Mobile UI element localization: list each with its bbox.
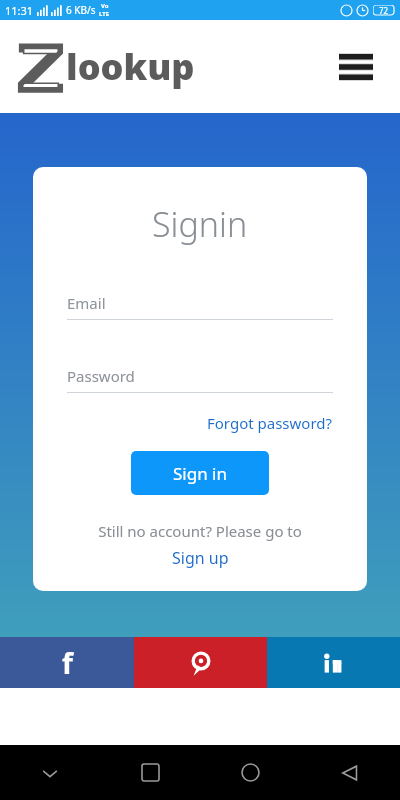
button[interactable]: Forgot password? <box>207 413 333 433</box>
button[interactable]: Home <box>200 745 300 800</box>
staticText: lookup <box>66 42 195 91</box>
button[interactable]: Facebook <box>0 637 134 688</box>
staticText: Still no account? Please go to <box>98 521 302 541</box>
staticText: Sign in <box>173 462 227 485</box>
staticText: f <box>62 644 73 682</box>
button[interactable]: LinkedIn <box>267 637 400 688</box>
button[interactable]: Menu <box>334 45 378 89</box>
staticText: Signin <box>152 201 248 247</box>
staticText: Email <box>67 293 106 313</box>
staticText: Password <box>67 366 135 386</box>
staticText: Forgot password? <box>207 413 333 433</box>
button[interactable]: Hide keyboard <box>0 745 100 800</box>
button[interactable]: Sign in <box>131 451 269 495</box>
button[interactable]: Password <box>67 366 333 393</box>
staticText: LTE <box>99 10 110 18</box>
staticText: 72 <box>379 5 389 16</box>
staticText: Vo <box>101 2 109 10</box>
button[interactable]: Sign up <box>172 547 229 569</box>
button[interactable]: Pinterest <box>134 637 267 688</box>
button[interactable]: Email <box>67 293 333 320</box>
staticText: 6 KB/s <box>66 3 96 17</box>
button[interactable]: Recents <box>100 745 200 800</box>
staticText: 11:31 <box>5 3 34 18</box>
button[interactable]: Back <box>300 745 400 800</box>
staticText: Sign up <box>172 547 229 569</box>
